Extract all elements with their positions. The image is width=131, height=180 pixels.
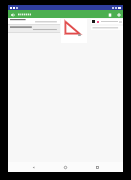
button[interactable]: Back xyxy=(30,164,37,171)
button[interactable] xyxy=(8,18,60,24)
button[interactable]: Home xyxy=(62,164,69,171)
button[interactable] xyxy=(8,25,60,32)
button[interactable]: Back xyxy=(9,11,16,18)
button[interactable]: Sketch canvas xyxy=(61,19,87,43)
button[interactable]: Add xyxy=(115,11,122,18)
button[interactable]: Notes xyxy=(106,11,113,18)
button[interactable]: Drawing tools xyxy=(91,19,123,24)
button[interactable]: Recent apps xyxy=(94,164,101,171)
button[interactable] xyxy=(18,13,32,16)
button[interactable] xyxy=(91,26,123,30)
